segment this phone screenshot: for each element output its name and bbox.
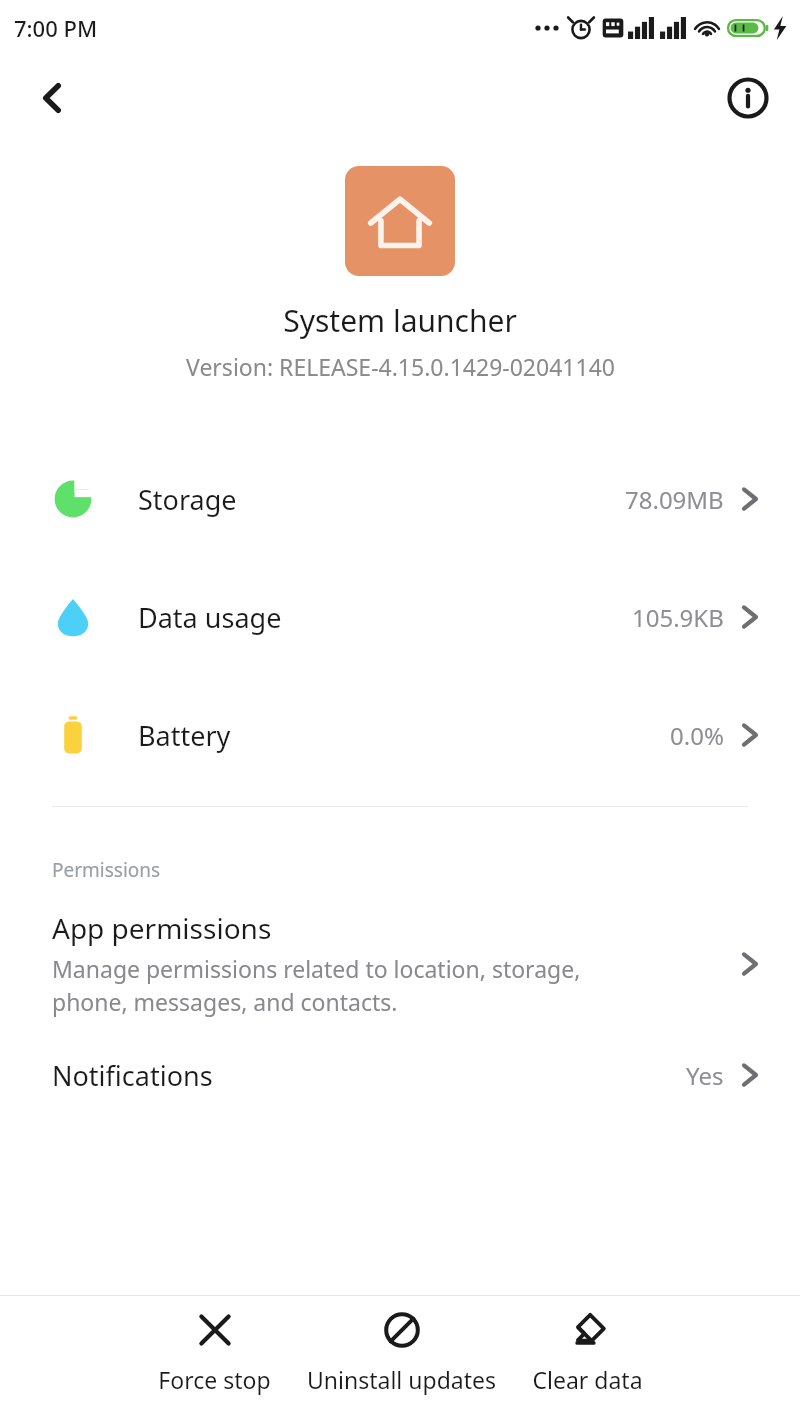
button[interactable]: App permissions (0, 905, 800, 1022)
button[interactable]: Notifications (0, 1036, 800, 1114)
staticText: 7:00 PM (14, 13, 98, 43)
staticText: Permissions (52, 857, 161, 883)
staticText: Yes (686, 1059, 724, 1092)
button[interactable]: Force stop (152, 1296, 277, 1409)
staticText: 105.9KB (632, 601, 724, 634)
staticText: Storage (138, 481, 237, 518)
staticText: System launcher (283, 300, 517, 341)
button[interactable]: Storage (0, 440, 800, 558)
button[interactable]: Data usage (0, 558, 800, 676)
staticText: 0.0% (670, 719, 724, 752)
staticText: Force stop (158, 1364, 271, 1395)
staticText: 78.09MB (625, 483, 724, 516)
staticText: Manage permissions related to location, … (52, 953, 581, 1018)
staticText: Battery (138, 717, 231, 754)
button[interactable]: Clear data (526, 1296, 649, 1409)
staticText: Uninstall updates (307, 1364, 496, 1395)
button[interactable]: Back (24, 70, 80, 126)
staticText: Version: RELEASE-4.15.0.1429-02041140 (186, 351, 615, 382)
button[interactable]: Battery (0, 676, 800, 794)
staticText: Data usage (138, 599, 282, 636)
button[interactable]: App info (720, 70, 776, 126)
button[interactable]: Uninstall updates (301, 1296, 502, 1409)
staticText: Notifications (52, 1057, 213, 1094)
staticText: App permissions (52, 909, 272, 947)
staticText: Clear data (532, 1364, 643, 1395)
